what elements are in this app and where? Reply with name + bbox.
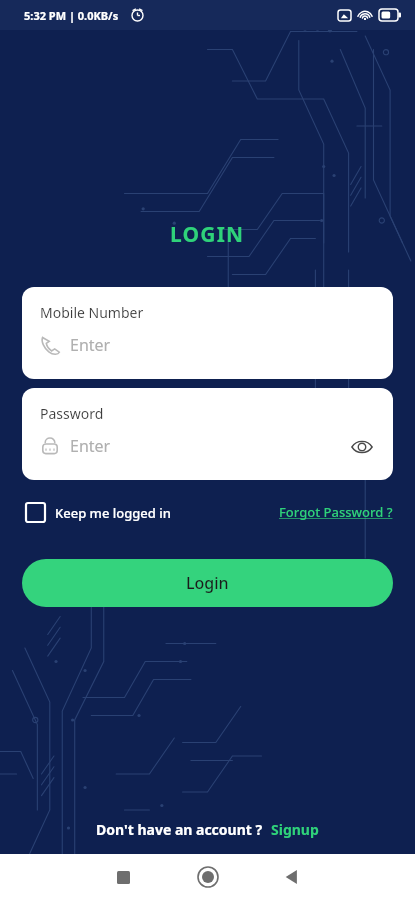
staticText: Login xyxy=(186,572,229,594)
button[interactable]: Password xyxy=(22,388,393,480)
staticText: Don't have an account ? xyxy=(96,820,263,839)
button[interactable]: Recent apps xyxy=(108,862,138,892)
staticText: Enter xyxy=(70,334,111,356)
staticText: 5:32 PM | 0.0KB/s xyxy=(24,8,119,23)
button[interactable]: Home xyxy=(191,860,225,894)
button[interactable]: Forgot Password ? xyxy=(279,503,393,521)
button[interactable]: Mobile Number xyxy=(22,287,393,379)
staticText: Enter xyxy=(70,435,111,457)
button[interactable]: Signup xyxy=(271,820,319,839)
button[interactable]: Keep me logged in xyxy=(26,503,175,522)
button[interactable]: Login xyxy=(22,559,393,607)
button[interactable]: Show password xyxy=(345,430,379,464)
staticText: Password xyxy=(40,404,104,423)
button[interactable]: Back xyxy=(277,862,307,892)
staticText: Mobile Number xyxy=(40,303,144,322)
staticText: LOGIN xyxy=(170,220,245,249)
staticText: Forgot Password ? xyxy=(279,503,393,521)
staticText: Keep me logged in xyxy=(55,504,171,522)
staticText: Signup xyxy=(271,820,319,839)
